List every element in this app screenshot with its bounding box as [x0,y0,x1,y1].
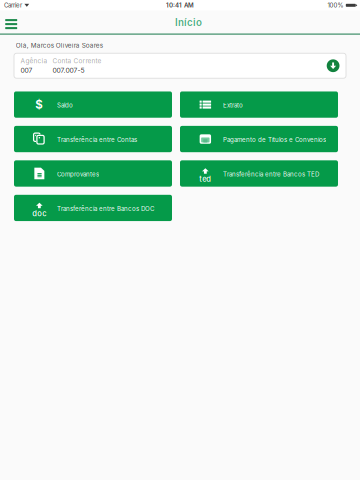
staticText: Início [175,17,202,28]
staticText: 100% [327,2,343,9]
button[interactable]: ted [180,160,338,187]
staticText: 10:41 AM [166,2,194,9]
staticText: doc [32,209,46,218]
staticText: Pagamento de Títulos e Convênios [223,136,326,143]
staticText: Saldo [57,102,73,109]
button[interactable]: doc [14,195,172,221]
staticText: Extrato [223,102,243,109]
staticText: Comprovantes [57,171,99,178]
staticText: Transferência entre Contas [57,136,137,143]
button[interactable]: Transferência entre Contas [14,126,172,152]
staticText: $ [35,98,43,112]
button[interactable]: Extrato [180,91,338,118]
button[interactable]: Pagamento de Títulos e Convênios [180,126,338,152]
staticText: Agência [20,57,47,65]
staticText: Carrier [4,2,22,9]
staticText: Conta Corrente [52,57,101,65]
staticText: 007.007-5 [52,66,84,74]
staticText: ted [199,174,211,183]
staticText: Transferência entre Bancos DOC [57,205,154,212]
button[interactable]: Comprovantes [14,160,172,187]
button[interactable]: Conta Corrente 007.007-5 [14,53,346,78]
staticText: 007 [20,66,32,74]
button[interactable]: Menu [0,12,22,34]
staticText: Olá, Marcos Oliveira Soares [16,41,103,49]
button[interactable]: $ [14,91,172,118]
staticText: Transferência entre Bancos TED [223,171,319,178]
